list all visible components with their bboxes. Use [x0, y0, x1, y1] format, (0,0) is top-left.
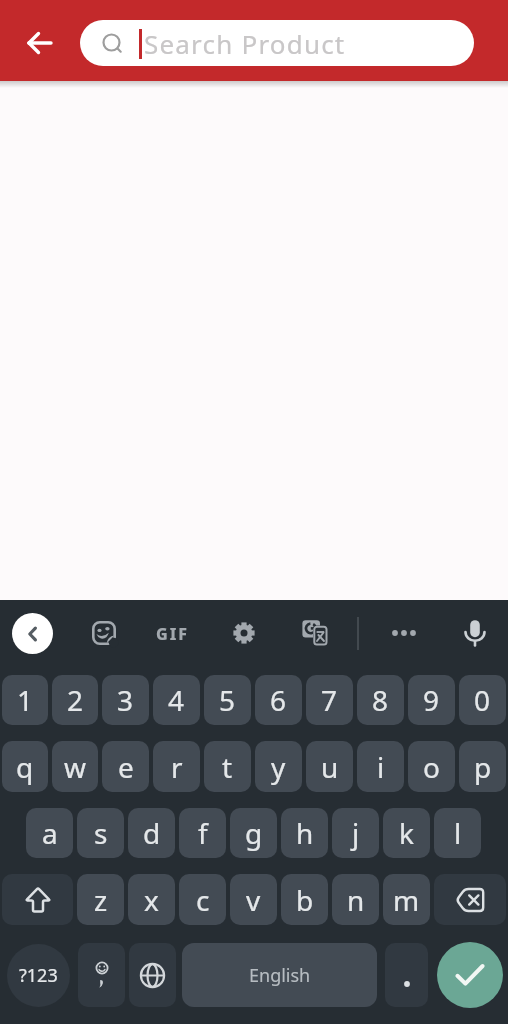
button[interactable]: 0 — [459, 675, 506, 725]
button[interactable]: t — [204, 741, 251, 792]
button[interactable]: w — [52, 741, 98, 792]
button[interactable]: j — [332, 808, 379, 858]
button[interactable]: x — [128, 874, 175, 925]
staticText: 2 — [67, 681, 84, 719]
button[interactable]: z — [77, 874, 124, 925]
staticText: w — [64, 748, 87, 786]
button[interactable]: g — [230, 808, 277, 858]
staticText: f — [198, 814, 208, 852]
button[interactable] — [2, 874, 73, 925]
button[interactable]: n — [332, 874, 379, 925]
button[interactable] — [434, 874, 506, 925]
button[interactable]: 7 — [306, 675, 353, 725]
staticText: r — [171, 748, 183, 786]
button[interactable] — [385, 943, 428, 1007]
staticText: u — [321, 748, 339, 786]
button[interactable]: b — [281, 874, 328, 925]
button[interactable]: h — [281, 808, 328, 858]
staticText: c — [196, 881, 210, 919]
staticText: 7 — [321, 681, 338, 719]
staticText: e — [118, 748, 134, 786]
button[interactable] — [16, 19, 64, 67]
button[interactable]: s — [77, 808, 124, 858]
button[interactable]: ?123 — [7, 944, 70, 1007]
button[interactable]: f — [179, 808, 226, 858]
button[interactable]: i — [357, 741, 404, 792]
button[interactable]: q — [2, 741, 48, 792]
button[interactable] — [222, 613, 266, 653]
button[interactable] — [382, 613, 426, 653]
button[interactable]: k — [383, 808, 430, 858]
staticText: t — [222, 748, 233, 786]
staticText: l — [454, 814, 462, 852]
staticText: q — [16, 748, 34, 786]
button[interactable]: m — [383, 874, 430, 925]
button[interactable]: a — [26, 808, 73, 858]
button[interactable]: GIF — [149, 614, 197, 654]
button[interactable] — [78, 943, 125, 1007]
button[interactable]: 4 — [153, 675, 200, 725]
staticText: g — [245, 814, 263, 852]
staticText: GIF — [156, 623, 190, 645]
button[interactable]: English — [182, 943, 377, 1007]
staticText: s — [94, 814, 108, 852]
staticText: x — [144, 881, 159, 919]
button[interactable]: r — [153, 741, 200, 792]
staticText: h — [296, 814, 314, 852]
staticText: 5 — [219, 681, 236, 719]
staticText: ?123 — [19, 963, 58, 988]
button[interactable]: d — [128, 808, 175, 858]
button[interactable]: e — [102, 741, 149, 792]
staticText: b — [296, 881, 314, 919]
staticText: English — [249, 963, 311, 988]
staticText: 6 — [270, 681, 287, 719]
staticText: m — [393, 881, 420, 919]
button[interactable]: Search Product — [80, 20, 474, 66]
button[interactable]: 3 — [102, 675, 149, 725]
button[interactable]: o — [408, 741, 455, 792]
button[interactable] — [82, 613, 126, 653]
button[interactable]: l — [434, 808, 481, 858]
staticText: i — [377, 748, 385, 786]
button[interactable]: 2 — [52, 675, 98, 725]
button[interactable]: 5 — [204, 675, 251, 725]
staticText: 0 — [474, 681, 491, 719]
button[interactable] — [453, 613, 497, 653]
staticText: d — [143, 814, 161, 852]
button[interactable]: y — [255, 741, 302, 792]
button[interactable]: p — [459, 741, 506, 792]
staticText: a — [42, 814, 58, 852]
button[interactable]: 8 — [357, 675, 404, 725]
staticText: 4 — [168, 681, 185, 719]
button[interactable]: c — [179, 874, 226, 925]
button[interactable]: 9 — [408, 675, 455, 725]
button[interactable] — [437, 942, 503, 1008]
staticText: n — [347, 881, 365, 919]
staticText: j — [352, 814, 360, 852]
staticText: 3 — [117, 681, 134, 719]
button[interactable]: v — [230, 874, 277, 925]
staticText: p — [474, 748, 492, 786]
staticText: y — [271, 748, 286, 786]
staticText: v — [246, 881, 261, 919]
button[interactable]: 6 — [255, 675, 302, 725]
staticText: 1 — [17, 681, 34, 719]
staticText: k — [399, 814, 414, 852]
staticText: 8 — [372, 681, 389, 719]
staticText: 9 — [423, 681, 440, 719]
staticText: o — [423, 748, 440, 786]
button[interactable] — [292, 613, 336, 653]
staticText: z — [94, 881, 108, 919]
button[interactable] — [129, 943, 176, 1007]
button[interactable]: u — [306, 741, 353, 792]
button[interactable] — [12, 613, 53, 654]
staticText: Search Product — [144, 26, 346, 61]
button[interactable]: 1 — [2, 675, 48, 725]
